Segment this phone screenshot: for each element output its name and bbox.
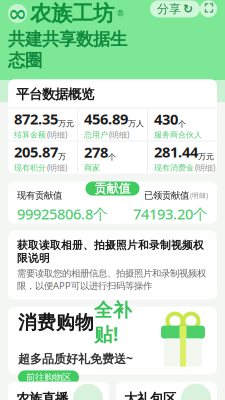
button[interactable]: 分享 [150,0,200,17]
staticText: 贡献值 [94,181,130,196]
staticText: 现有贡献值 [17,190,62,201]
staticText: 456.89 [84,109,128,128]
staticText: ® [117,8,124,19]
staticText: 281.44 [154,142,198,161]
button[interactable]: 456.89 [78,109,147,140]
staticText: 农族直播 [16,390,68,400]
staticText: 现有积分 [14,163,46,173]
button[interactable]: 扫一扫 [200,0,217,17]
staticText: (明细) [195,162,215,173]
staticText: 全补贴! [94,299,132,346]
staticText: 商家 [84,163,100,173]
button[interactable]: 农族直播 [8,382,109,400]
staticText: 万元 [58,119,74,128]
staticText: 个 [178,119,186,129]
staticText: 万人 [128,119,144,128]
staticText: 消费购物 [18,311,94,334]
button[interactable]: 430 [148,109,217,140]
staticText: 430 [154,109,178,129]
staticText: 总用户 [84,130,108,140]
staticText: 前往购物区 [26,372,71,383]
button[interactable]: 消费购物 [8,307,217,375]
staticText: 农族工坊 [30,0,114,27]
staticText: ∞ [8,1,27,26]
button[interactable]: 大礼包区 [116,382,217,400]
staticText: ⛶ [204,3,212,15]
staticText: 平台数据概览 [16,86,94,103]
staticText: 大礼包区 [124,390,176,400]
staticText: 278 [84,142,108,162]
staticText: 万元 [198,152,214,161]
staticText: 分享 [157,1,181,16]
staticText: 个 [108,152,116,162]
staticText: 万 [58,152,66,161]
staticText: 现有消费金 [154,163,194,173]
staticText: (明细) [109,129,129,140]
staticText: 205.87 [14,142,58,161]
staticText: ↻ [183,2,193,16]
button[interactable]: 205.87 [8,142,77,173]
staticText: (明细) [190,191,208,200]
button[interactable]: 281.44 [148,142,217,173]
staticText: 服务商合伙人 [154,130,202,140]
staticText: 74193.20个 [133,204,208,223]
staticText: 结算金额 [14,130,46,140]
staticText: 共建共享数据生态圈 [8,29,127,71]
staticText: 99925806.8个 [17,204,108,223]
button[interactable]: 872.35 [8,109,77,140]
staticText: 获取读取相册、拍摄照片和录制视频权限说明 [17,238,204,265]
staticText: (明细) [47,162,67,173]
staticText: 872.35 [14,109,58,128]
button[interactable]: 278 [78,142,147,173]
staticText: 已领贡献值 [144,190,189,201]
staticText: 超多品质好礼免费送~ [18,350,133,366]
staticText: (明细) [47,129,67,140]
staticText: 需要读取您的相册信息、拍摄照片和录制视频权限，以便APP可以进行扫码等操作 [17,268,206,292]
